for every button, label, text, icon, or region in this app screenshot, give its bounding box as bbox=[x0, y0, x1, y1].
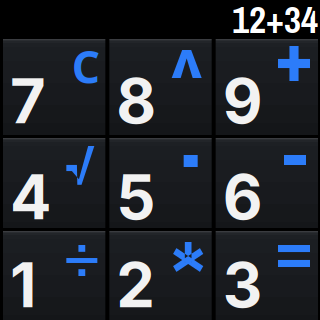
staticText: 8 bbox=[116, 64, 156, 138]
button[interactable]: 7, clear bbox=[3, 39, 105, 135]
staticText: 7 bbox=[10, 64, 46, 138]
button[interactable]: 6, minus bbox=[216, 138, 318, 228]
staticText: 4 bbox=[10, 160, 51, 234]
staticText: 2 bbox=[116, 248, 155, 320]
button[interactable]: 1, divide bbox=[3, 231, 105, 320]
button[interactable]: 3, equals bbox=[216, 231, 318, 320]
staticText: 1 bbox=[10, 248, 36, 320]
button[interactable]: 4, square root bbox=[3, 138, 105, 228]
button[interactable]: 8, power bbox=[109, 39, 212, 135]
staticText: 12+34 bbox=[232, 0, 318, 45]
button[interactable]: 2, multiply bbox=[109, 231, 212, 320]
staticText: 5 bbox=[116, 160, 155, 234]
button[interactable]: 5, decimal point bbox=[109, 138, 212, 228]
staticText: C bbox=[72, 37, 100, 96]
staticText: 6 bbox=[223, 160, 263, 234]
staticText: 9 bbox=[223, 64, 263, 138]
button[interactable]: 9, plus bbox=[216, 39, 318, 135]
staticText: 3 bbox=[223, 248, 263, 320]
